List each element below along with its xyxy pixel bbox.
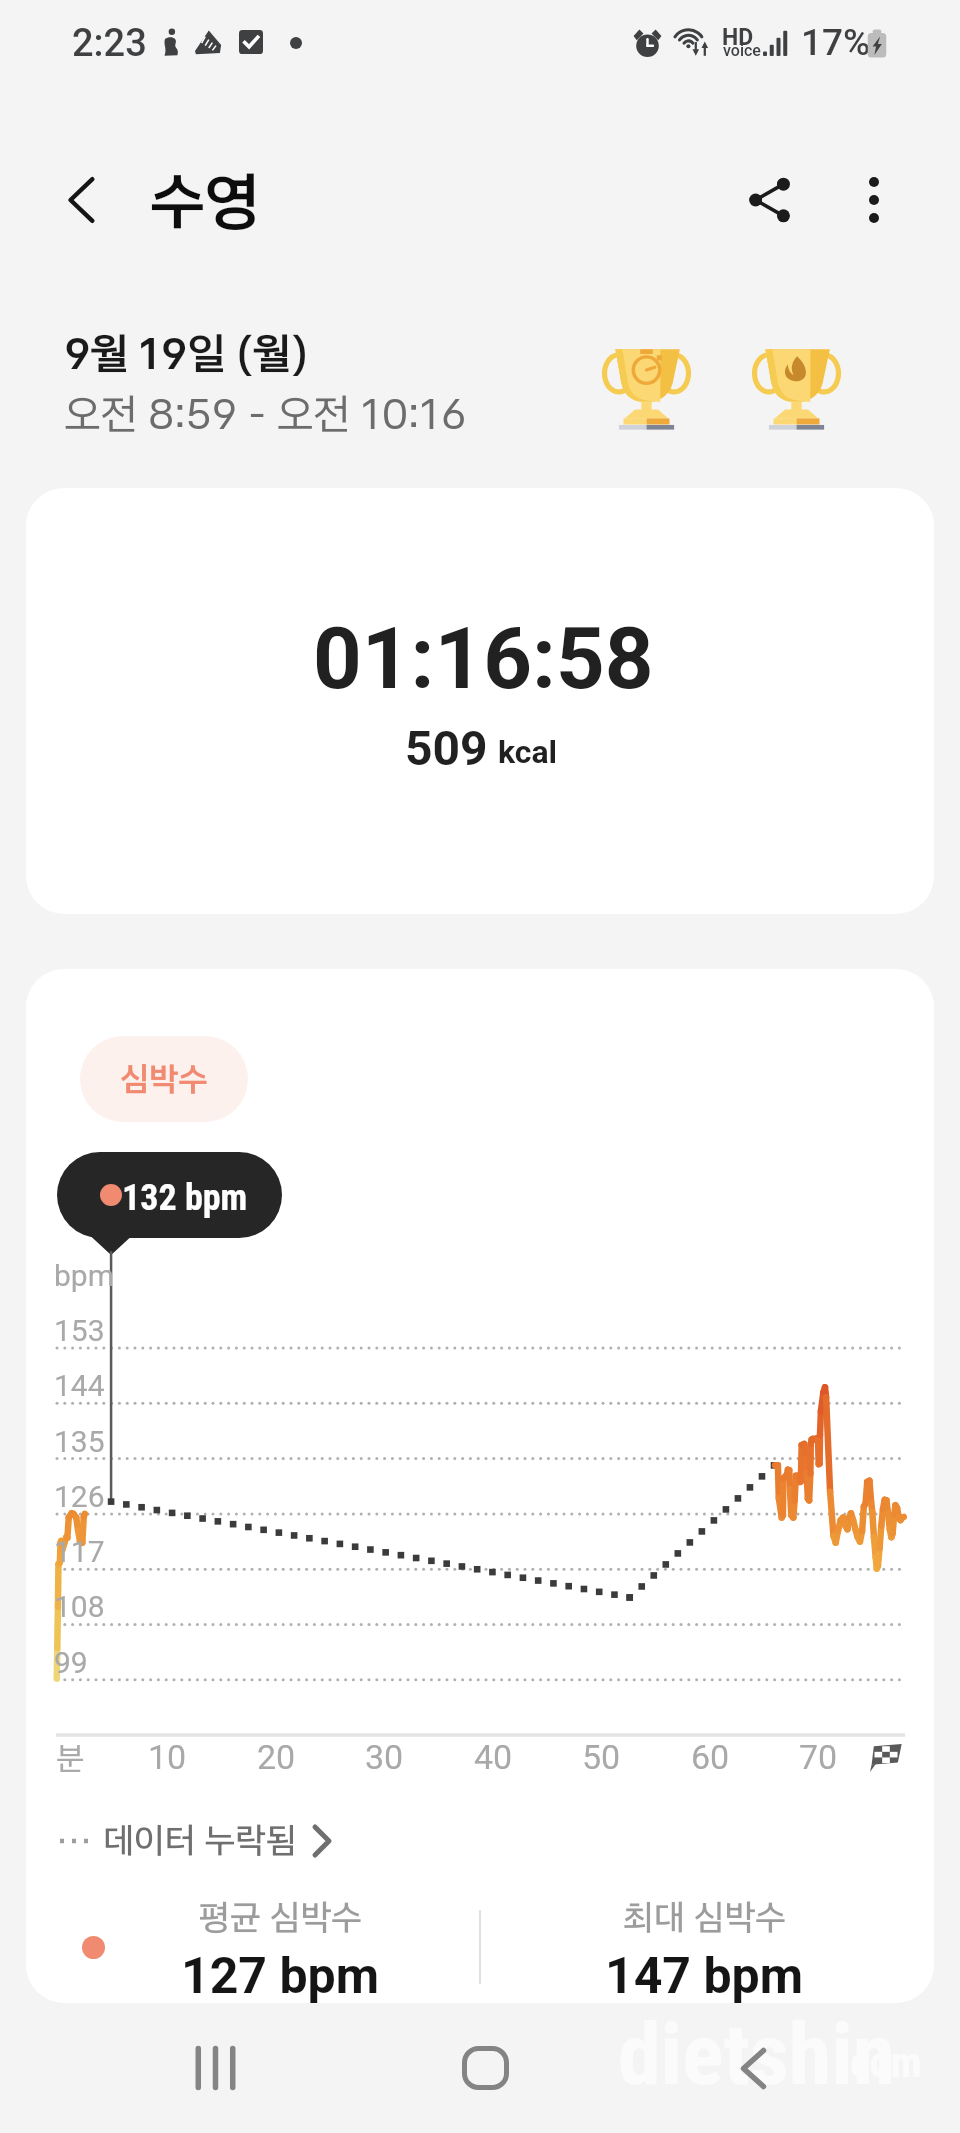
button[interactable]: Back xyxy=(693,2008,813,2128)
staticText: 70 xyxy=(799,1737,838,1777)
staticText: 데이터 누락됨 xyxy=(103,1819,297,1862)
staticText: 132 bpm xyxy=(122,1177,248,1219)
staticText: 135 xyxy=(54,1424,105,1459)
staticText: 147 bpm xyxy=(605,1947,804,2003)
staticText: 9월 19일 (월) xyxy=(64,327,309,379)
staticText: bpm xyxy=(54,1258,114,1293)
staticText: 17% xyxy=(801,21,871,64)
staticText: kcal xyxy=(498,733,558,771)
staticText: dietshin xyxy=(618,2004,896,2105)
button[interactable]: 심박수 xyxy=(80,1036,248,1122)
staticText: 153 xyxy=(54,1313,105,1348)
staticText: 2:23 xyxy=(72,21,147,66)
staticText: 20 xyxy=(257,1737,296,1777)
button[interactable]: Home xyxy=(425,2008,545,2128)
staticText: 40 xyxy=(474,1737,513,1777)
button[interactable]: More options xyxy=(828,154,920,246)
staticText: 108 xyxy=(54,1589,105,1624)
staticText: 10 xyxy=(148,1737,187,1777)
staticText: 30 xyxy=(365,1737,404,1777)
staticText: 수영 xyxy=(150,163,260,239)
staticText: 99 xyxy=(54,1645,88,1680)
staticText: 01:16:58 xyxy=(313,609,654,709)
button[interactable]: Recents xyxy=(155,2008,275,2128)
staticText: 최대 심박수 xyxy=(623,1896,786,1939)
button[interactable]: 데이터 누락됨 xyxy=(57,1819,331,1862)
staticText: 50 xyxy=(582,1737,621,1777)
staticText: 60 xyxy=(691,1737,730,1777)
staticText: 126 xyxy=(54,1479,105,1514)
staticText: 117 xyxy=(54,1534,105,1569)
staticText: 오전 8:59 - 오전 10:16 xyxy=(64,388,467,439)
button[interactable]: Back xyxy=(37,154,129,246)
staticText: .com xyxy=(838,2038,922,2087)
staticText: 평균 심박수 xyxy=(199,1896,362,1939)
button[interactable]: 01:16:58 xyxy=(26,488,934,914)
button[interactable]: Share xyxy=(724,154,816,246)
staticText: 심박수 xyxy=(120,1059,208,1100)
staticText: 144 xyxy=(54,1368,105,1403)
staticText: 127 bpm xyxy=(181,1947,380,2003)
staticText: HD xyxy=(722,24,754,51)
staticText: 분 xyxy=(56,1739,85,1778)
staticText: voice xyxy=(723,41,761,60)
staticText: 509 xyxy=(405,720,488,776)
